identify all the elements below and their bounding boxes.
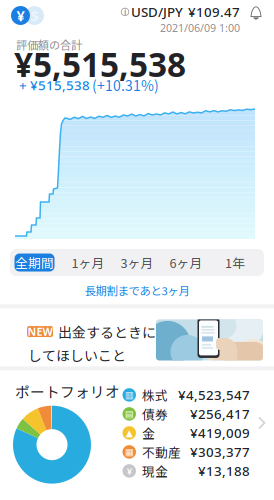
staticText: ¥ bbox=[16, 6, 24, 25]
staticText: 株式 bbox=[142, 386, 168, 404]
staticText: 2021/06/09 1:00 bbox=[160, 21, 240, 35]
staticText: 評価額の合計 bbox=[16, 36, 82, 53]
staticText: (+10.31%) bbox=[92, 75, 159, 95]
staticText: 1ヶ月 bbox=[71, 253, 104, 272]
staticText: ¥256,417 bbox=[190, 405, 250, 423]
staticText: $ bbox=[30, 6, 38, 25]
staticText: 長期割まであと3ヶ月 bbox=[84, 282, 189, 298]
staticText: ▤ bbox=[125, 409, 134, 419]
staticText: ¥5,515,538 bbox=[14, 42, 186, 86]
button[interactable]: お知らせ bbox=[240, 0, 262, 19]
button[interactable]: 1ヶ月 bbox=[63, 252, 112, 272]
staticText: 3ヶ月 bbox=[120, 253, 153, 272]
staticText: NEW bbox=[27, 324, 52, 339]
staticText: ¥109.47 bbox=[188, 3, 240, 21]
staticText: ▲ bbox=[126, 428, 133, 438]
staticText: ¥303,377 bbox=[190, 443, 250, 461]
staticText: ▥ bbox=[125, 390, 134, 400]
button[interactable]: 通貨切替 bbox=[10, 0, 44, 25]
staticText: 不動産 bbox=[142, 443, 181, 461]
button[interactable]: 6ヶ月 bbox=[161, 252, 210, 272]
button[interactable]: 全期間 bbox=[14, 252, 63, 272]
staticText: 6ヶ月 bbox=[169, 253, 202, 272]
staticText: 金 bbox=[142, 424, 155, 442]
button[interactable]: ポートフォリオ bbox=[0, 370, 274, 484]
staticText: ¥4,523,547 bbox=[178, 386, 250, 404]
staticText: 現金 bbox=[142, 462, 168, 480]
staticText: 債券 bbox=[142, 405, 168, 423]
staticText: してほしいこと bbox=[28, 345, 126, 365]
staticText: 全期間 bbox=[15, 253, 54, 272]
staticText: i bbox=[124, 6, 126, 17]
button[interactable]: 長期割まであと3ヶ月 bbox=[0, 276, 274, 304]
staticText: ¥13,188 bbox=[198, 462, 250, 480]
staticText: ポートフォリオ bbox=[15, 380, 120, 402]
staticText: 出金するときに思い出 bbox=[58, 321, 198, 342]
staticText: ¥ bbox=[127, 465, 132, 477]
staticText: ¥419,009 bbox=[190, 424, 250, 442]
button[interactable]: 1年 bbox=[210, 252, 259, 272]
staticText: ▦ bbox=[125, 447, 134, 457]
staticText: USD/JPY bbox=[131, 3, 183, 21]
button[interactable]: 3ヶ月 bbox=[112, 252, 161, 272]
staticText: + ¥515,538 bbox=[19, 76, 90, 94]
button[interactable]: NEW bbox=[0, 308, 274, 366]
staticText: 1年 bbox=[225, 253, 245, 272]
